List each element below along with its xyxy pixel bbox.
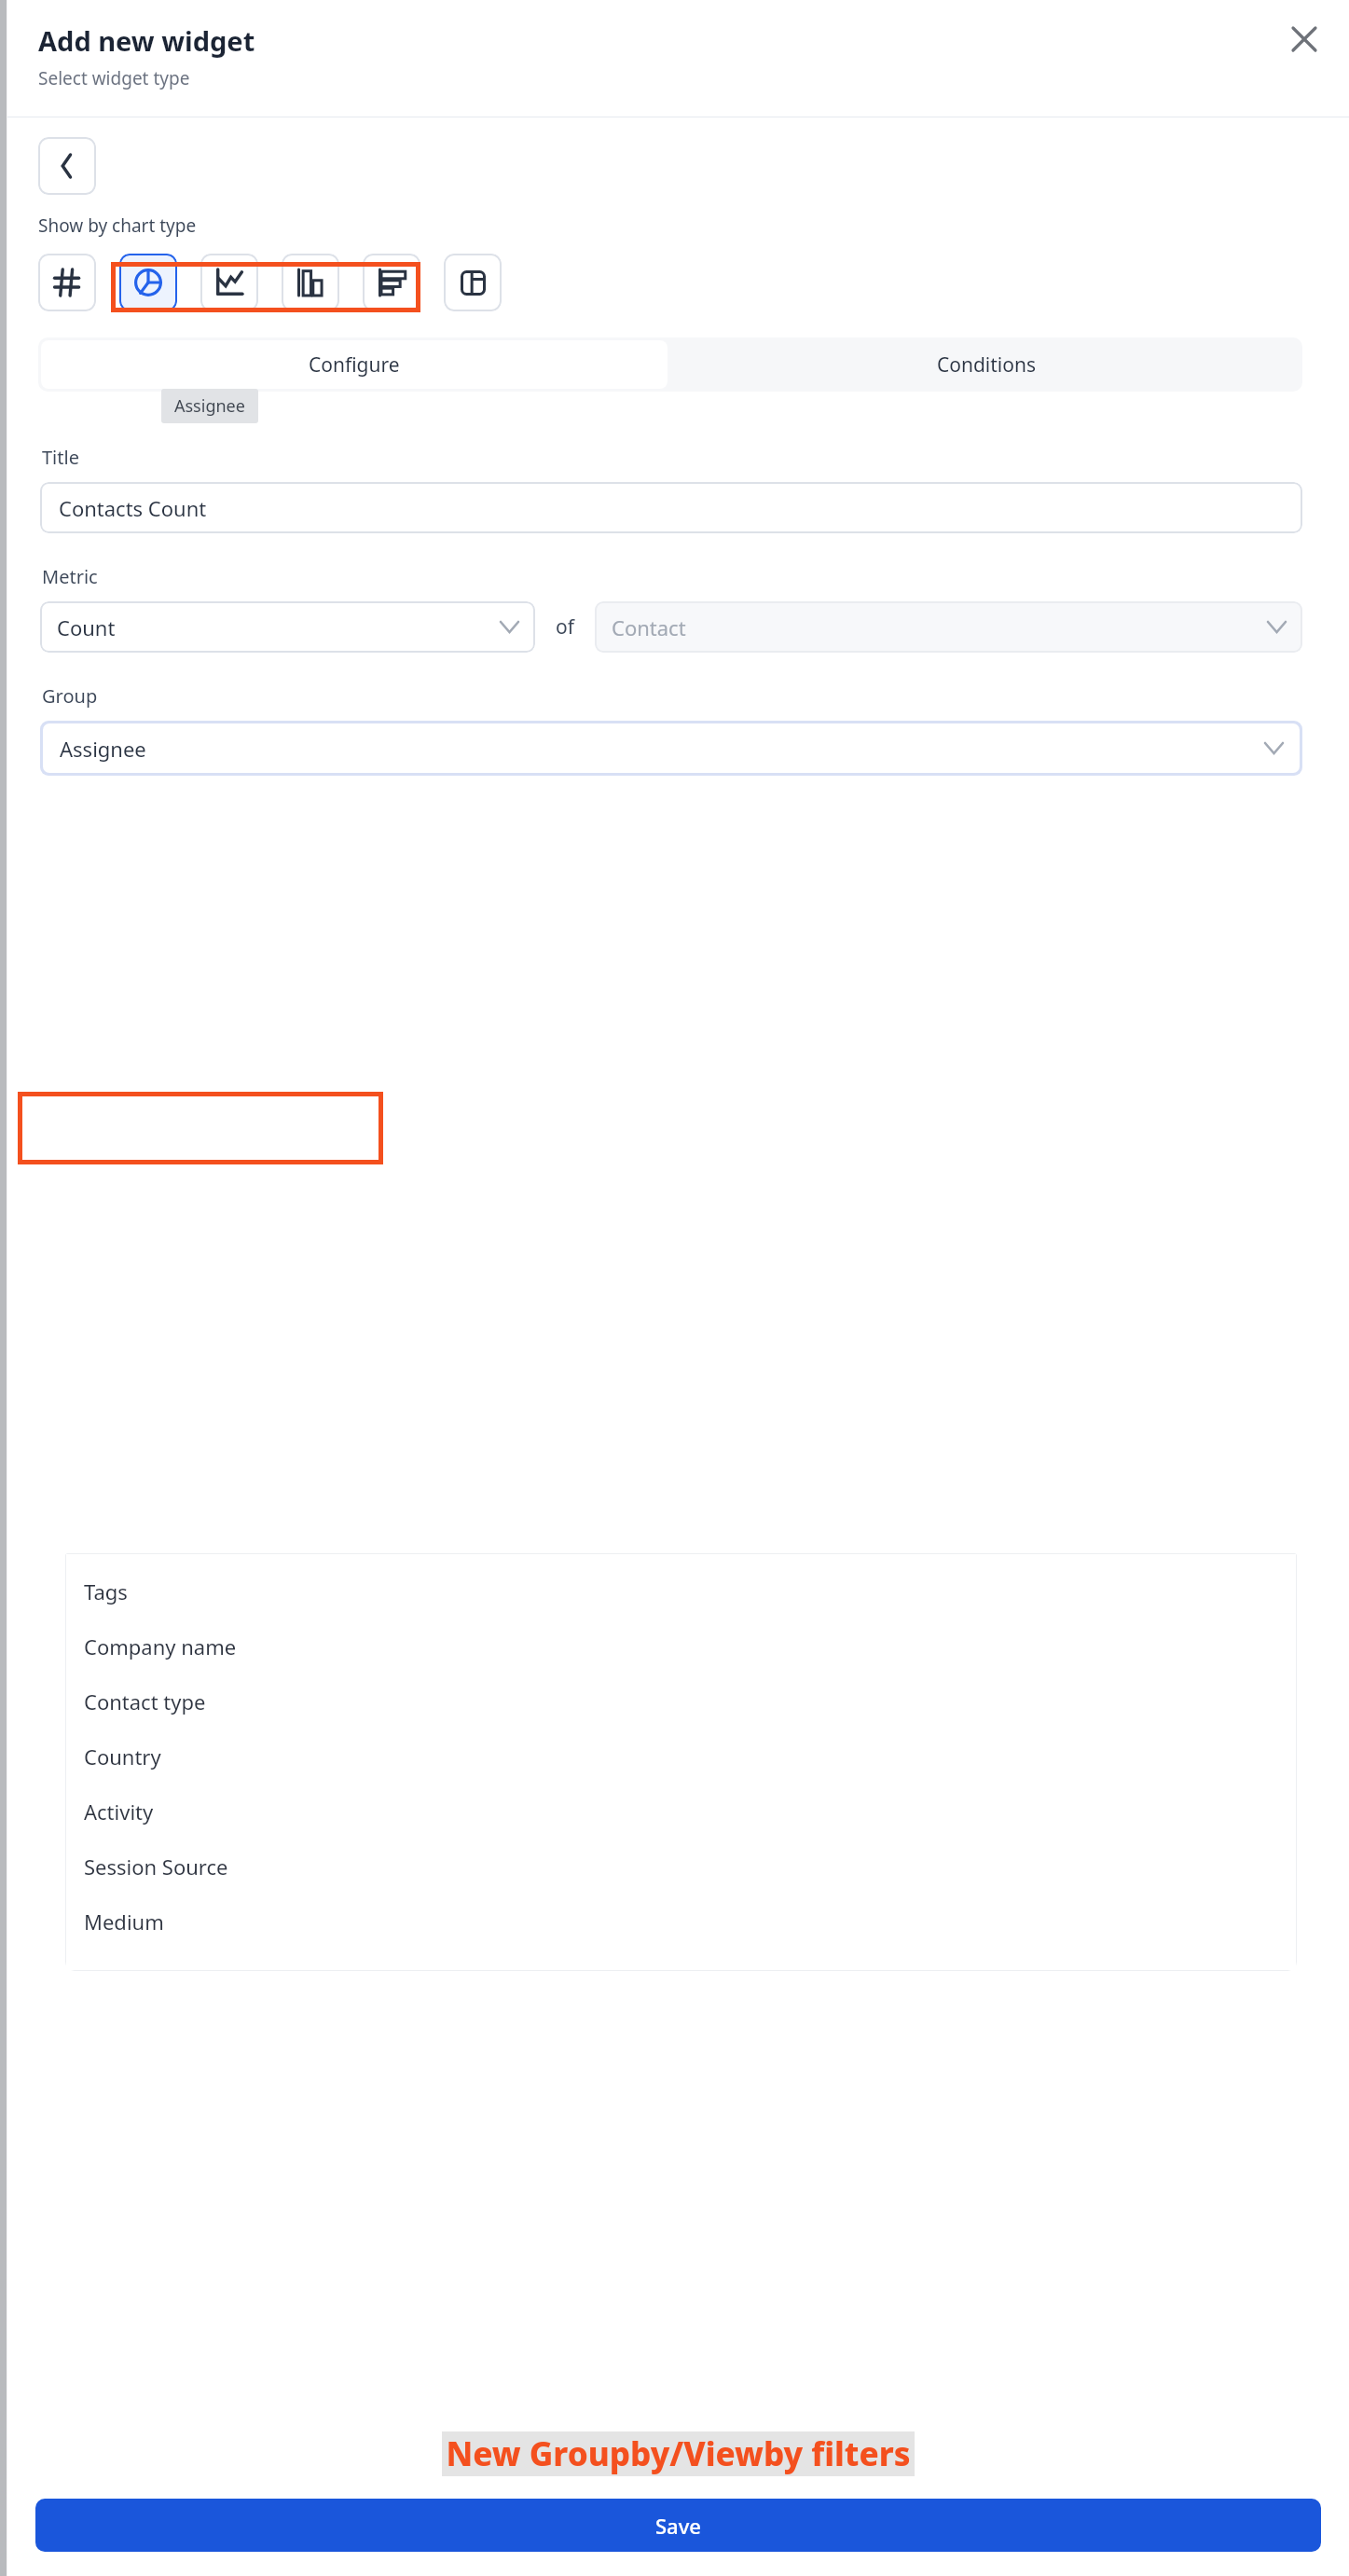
staticText: of (556, 613, 574, 641)
button[interactable]: Medium (65, 1894, 1297, 1949)
button[interactable]: Contact (595, 601, 1302, 653)
button[interactable]: Count (40, 601, 535, 653)
button[interactable]: Chart type (38, 254, 96, 311)
staticText: Tags (84, 1577, 128, 1605)
button[interactable]: Assignee (43, 723, 1300, 773)
button[interactable]: Close (1278, 13, 1330, 65)
button[interactable]: Country (65, 1729, 1297, 1784)
button[interactable]: Chart type (200, 254, 258, 311)
button[interactable]: Contacts Count (40, 482, 1302, 533)
staticText: Add new widget (38, 22, 255, 59)
button[interactable]: Contact type (65, 1674, 1297, 1729)
button[interactable]: Chart type (282, 254, 339, 311)
staticText: Configure (309, 351, 400, 379)
button[interactable]: Conditions (670, 337, 1302, 392)
button[interactable]: Back (38, 137, 96, 195)
staticText: New Groupby/Viewby filters (446, 2431, 911, 2476)
staticText: Contacts Count (59, 494, 207, 522)
staticText: Country (84, 1743, 161, 1770)
staticText: Show by chart type (38, 214, 197, 238)
staticText: Group (42, 683, 98, 709)
button[interactable]: Tags (65, 1564, 1297, 1619)
staticText: Contact type (84, 1687, 206, 1715)
staticText: Activity (84, 1798, 154, 1825)
button[interactable]: Configure (41, 340, 668, 389)
staticText: Count (57, 613, 116, 641)
button[interactable]: Chart type (444, 254, 502, 311)
staticText: Save (655, 2512, 701, 2540)
staticText: Assignee (174, 394, 245, 418)
button[interactable]: Company name (65, 1619, 1297, 1674)
staticText: Conditions (937, 351, 1037, 379)
button[interactable]: Activity (65, 1784, 1297, 1839)
staticText: Medium (84, 1908, 164, 1935)
staticText: Select widget type (38, 66, 190, 90)
staticText: Assignee (60, 735, 146, 763)
button[interactable]: Chart type (119, 254, 177, 311)
staticText: Company name (84, 1632, 237, 1660)
button[interactable]: Session Source (65, 1839, 1297, 1894)
button[interactable]: Chart type (363, 254, 420, 311)
staticText: Contact (612, 613, 686, 641)
staticText: Session Source (84, 1853, 228, 1880)
button[interactable]: Save (35, 2499, 1321, 2552)
staticText: Title (42, 445, 79, 470)
staticText: Metric (42, 564, 98, 589)
